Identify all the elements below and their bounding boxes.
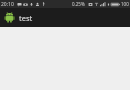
staticText: test — [19, 13, 33, 23]
button[interactable]: App icon — [3, 11, 16, 24]
staticText: 100 — [121, 1, 129, 7]
staticText: 0.25% — [72, 1, 85, 7]
staticText: 20:10 — [1, 1, 14, 8]
